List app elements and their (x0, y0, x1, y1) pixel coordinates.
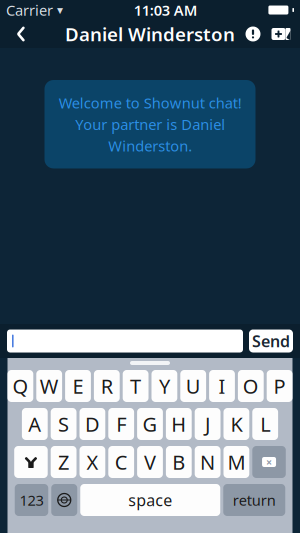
button[interactable]: W (36, 370, 62, 402)
staticText: S (58, 411, 69, 437)
staticText: U (186, 373, 201, 399)
staticText: B (172, 449, 185, 475)
staticText: P (274, 373, 286, 399)
staticText: F (116, 411, 126, 437)
staticText: J (205, 411, 210, 437)
button[interactable]: K (223, 408, 249, 440)
button[interactable]: Q (7, 370, 33, 402)
staticText: E (72, 373, 83, 399)
button[interactable]: Z (51, 446, 76, 478)
button[interactable]: Next keyboard (51, 484, 77, 516)
button[interactable]: L (252, 408, 278, 440)
button[interactable]: return (223, 484, 285, 516)
button[interactable]: Y (151, 370, 177, 402)
button[interactable]: P (267, 370, 292, 402)
staticText: ▾ (57, 3, 63, 17)
button[interactable]: H (166, 408, 192, 440)
staticText: Daniel Winderston (65, 22, 235, 46)
button[interactable]: X (79, 446, 105, 478)
button[interactable]: B (166, 446, 192, 478)
staticText: Carrier (6, 0, 53, 20)
button[interactable]: F (108, 408, 134, 440)
button[interactable]: N (195, 446, 220, 478)
staticText: return (233, 490, 276, 510)
button[interactable]: Start video call (266, 20, 296, 48)
staticText: R (101, 373, 113, 399)
button[interactable]: U (180, 370, 206, 402)
staticText: 11:03 AM (134, 0, 198, 20)
button[interactable]: C (108, 446, 134, 478)
staticText: Welcome to Shownut chat! Your partner is… (58, 93, 241, 155)
button[interactable]: Delete (252, 446, 286, 478)
staticText: × (266, 455, 272, 469)
button[interactable]: V (137, 446, 163, 478)
button[interactable]: space (80, 484, 220, 516)
staticText: A (28, 411, 41, 437)
staticText: V (144, 449, 156, 475)
button[interactable]: Report (240, 20, 266, 48)
staticText: X (86, 449, 98, 475)
staticText: Send (252, 330, 290, 352)
button[interactable]: D (79, 408, 105, 440)
staticText: D (85, 411, 100, 437)
button[interactable]: R (94, 370, 120, 402)
button[interactable]: A (22, 408, 48, 440)
button[interactable]: E (65, 370, 91, 402)
staticText: N (200, 449, 215, 475)
button[interactable]: I (209, 370, 235, 402)
button[interactable]: G (137, 408, 163, 440)
button[interactable]: J (195, 408, 220, 440)
button[interactable]: Shift (14, 446, 48, 478)
staticText: W (40, 373, 59, 399)
staticText: Y (159, 373, 170, 399)
staticText: 123 (19, 490, 43, 510)
button[interactable]: M (223, 446, 249, 478)
button[interactable]: Send (249, 329, 293, 352)
button[interactable]: S (51, 408, 76, 440)
button[interactable]: O (238, 370, 264, 402)
button[interactable]: 123 (15, 484, 48, 516)
staticText: C (115, 449, 128, 475)
button[interactable]: T (123, 370, 148, 402)
staticText: space (128, 489, 172, 511)
button[interactable]: Back (4, 20, 38, 48)
staticText: M (227, 449, 245, 475)
staticText: H (171, 411, 186, 437)
staticText: L (260, 411, 270, 437)
staticText: T (130, 373, 141, 399)
staticText: Z (58, 449, 69, 475)
staticText: I (218, 373, 225, 399)
staticText: G (142, 411, 157, 437)
staticText: Q (12, 373, 28, 399)
staticText: O (243, 373, 259, 399)
staticText: K (230, 411, 242, 437)
